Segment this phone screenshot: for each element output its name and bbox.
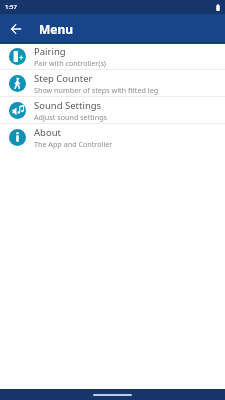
button[interactable]: Back xyxy=(4,17,28,41)
staticText: Show number of steps with fitted leg xyxy=(34,85,159,95)
button[interactable]: About xyxy=(0,124,225,151)
button[interactable]: Step Counter xyxy=(0,70,225,97)
staticText: Step Counter xyxy=(34,72,93,85)
staticText: About xyxy=(34,126,61,139)
staticText: Menu xyxy=(39,21,74,37)
staticText: The App and Controller xyxy=(34,139,113,149)
button[interactable]: Sound Settings xyxy=(0,97,225,124)
staticText: Adjust sound settings xyxy=(34,112,108,122)
staticText: Sound Settings xyxy=(34,99,102,112)
staticText: 1:57 xyxy=(5,3,17,11)
staticText: Pair with controller(s) xyxy=(34,58,106,68)
button[interactable]: Pairing xyxy=(0,43,225,70)
staticText: Pairing xyxy=(34,45,66,58)
